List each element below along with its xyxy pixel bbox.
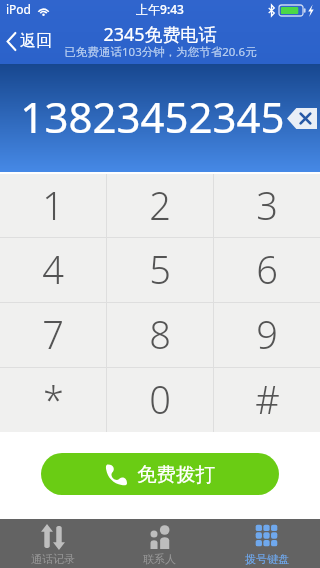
button[interactable]: 2 [107,174,213,237]
button[interactable]: 拨号键盘 [213,519,320,568]
button[interactable]: 免费拨打 [41,453,279,495]
staticText: 已免费通话103分钟，为您节省20.6元 [64,44,257,59]
button[interactable]: 6 [214,238,320,302]
button[interactable]: 3 [214,174,320,237]
staticText: 2 [149,179,171,231]
staticText: 9 [256,308,278,360]
staticText: 联系人 [143,552,176,566]
staticText: 免费拨打 [137,462,215,487]
button[interactable]: 9 [214,303,320,367]
button[interactable]: 0 [107,368,213,432]
staticText: 3 [256,179,278,231]
staticText: 通话记录 [31,552,75,566]
staticText: # [255,373,280,425]
staticText: 1 [42,179,64,231]
staticText: 5 [149,243,171,295]
staticText: 0 [149,373,171,425]
button[interactable]: 7 [0,303,106,367]
button[interactable]: 4 [0,238,106,302]
button[interactable]: 联系人 [106,519,213,568]
staticText: 2345免费电话 [103,22,217,44]
staticText: 8 [149,308,171,360]
button[interactable]: * [0,368,106,432]
staticText: iPod [6,1,31,17]
button[interactable]: Backspace [286,107,318,129]
button[interactable]: 通话记录 [0,519,106,568]
staticText: 上午9:43 [136,1,184,17]
staticText: 拨号键盘 [245,552,289,566]
staticText: 13823452345 [20,88,285,145]
staticText: 6 [256,243,278,295]
button[interactable]: 5 [107,238,213,302]
staticText: 返回 [20,31,52,51]
button[interactable]: 8 [107,303,213,367]
button[interactable]: # [214,368,320,432]
staticText: * [43,373,64,425]
staticText: 4 [42,243,64,295]
staticText: 7 [42,308,64,360]
button[interactable]: 1 [0,174,106,237]
button[interactable]: 返回 [5,28,52,54]
